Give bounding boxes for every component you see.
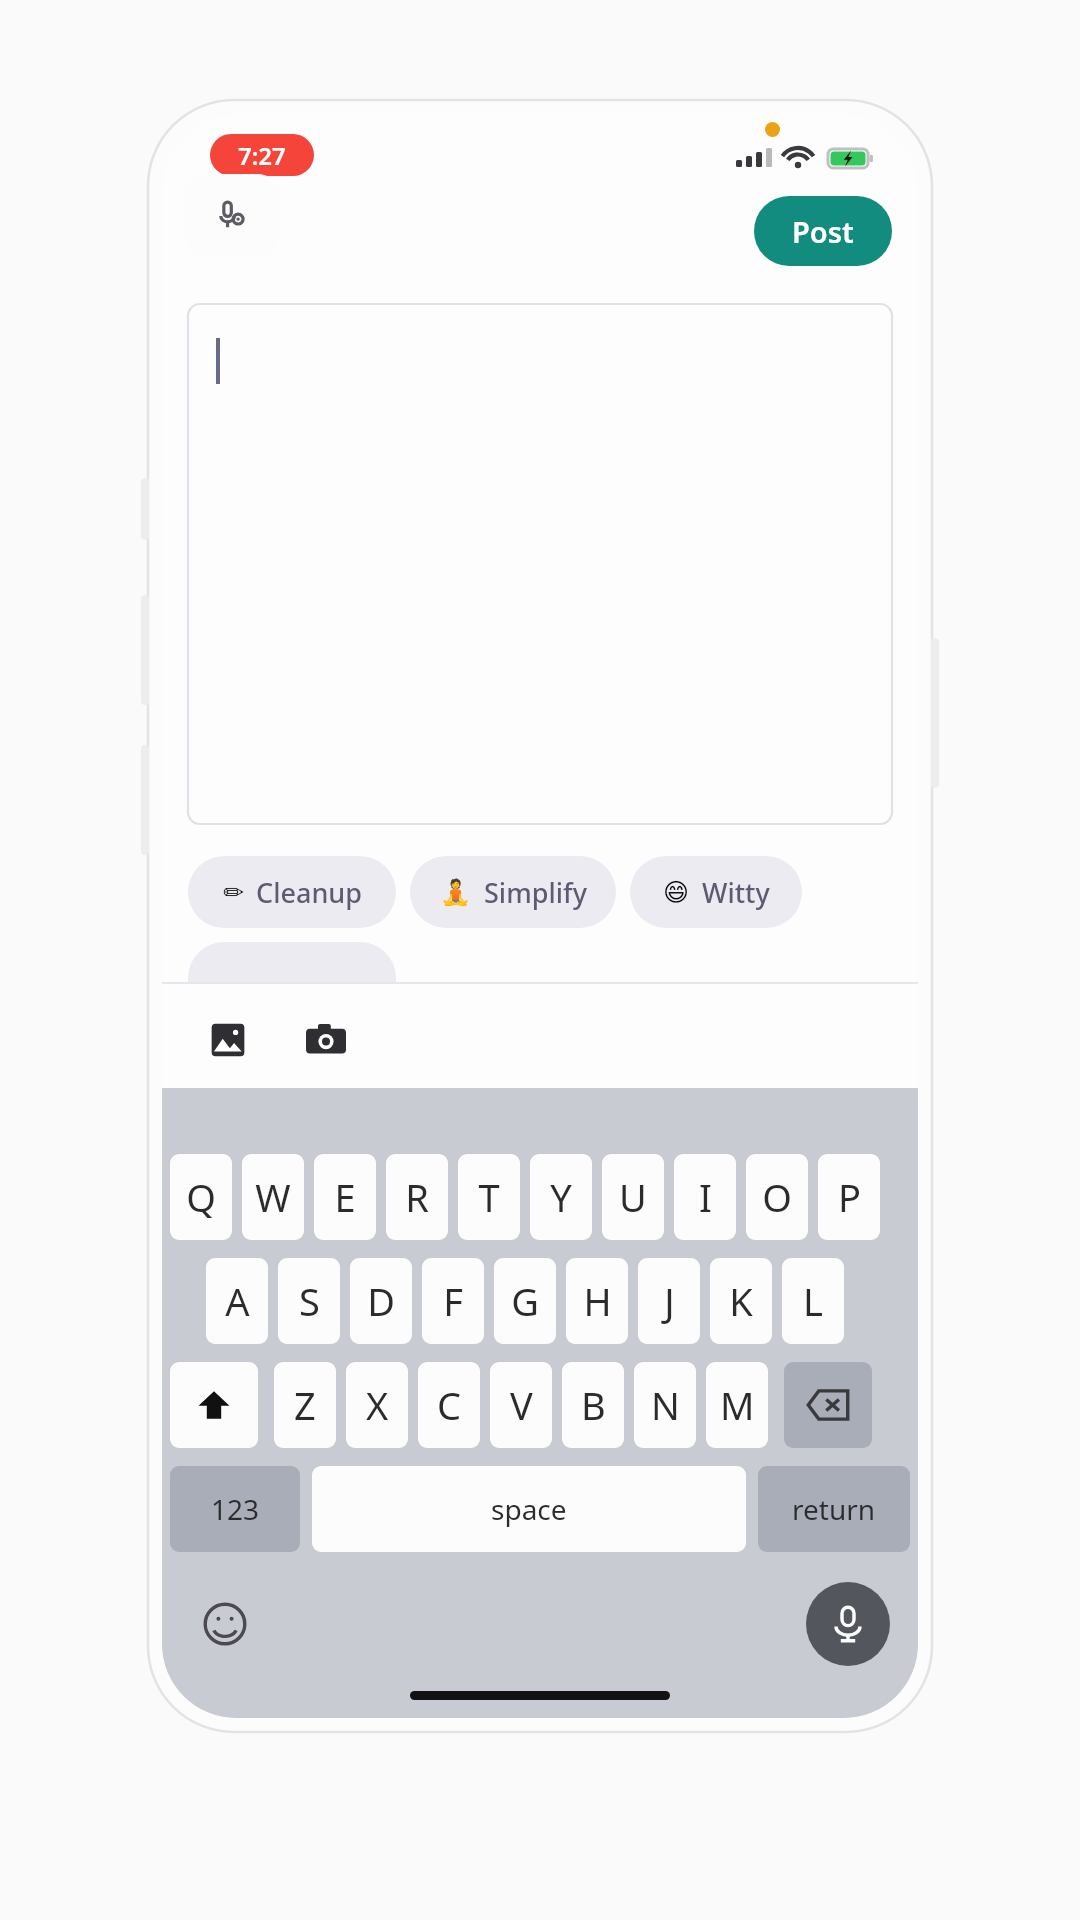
staticText: T (478, 1171, 500, 1223)
staticText: 🧘 (440, 878, 472, 907)
button[interactable]: R (386, 1154, 448, 1240)
button[interactable]: G (494, 1258, 556, 1344)
button[interactable]: S (278, 1258, 340, 1344)
staticText: return (792, 1490, 876, 1528)
staticText: R (405, 1171, 429, 1223)
button[interactable]: Q (170, 1154, 232, 1240)
button[interactable]: I (674, 1154, 736, 1240)
staticText: E (334, 1171, 356, 1223)
button[interactable]: Y (530, 1154, 592, 1240)
button[interactable]: Post (754, 196, 892, 266)
button[interactable]: N (634, 1362, 696, 1448)
button[interactable]: 123 (170, 1466, 300, 1552)
button[interactable]: 🧘 (410, 856, 616, 928)
button[interactable]: F (422, 1258, 484, 1344)
button[interactable]: Shift (170, 1362, 258, 1448)
button[interactable]: P (818, 1154, 880, 1240)
staticText: W (255, 1171, 291, 1223)
staticText: X (366, 1379, 389, 1431)
button[interactable]: X (346, 1362, 408, 1448)
staticText: Simplify (484, 874, 587, 911)
button[interactable]: L (782, 1258, 844, 1344)
staticText: A (225, 1275, 250, 1327)
staticText: Cleanup (256, 874, 362, 911)
button[interactable]: K (710, 1258, 772, 1344)
button[interactable]: 😄 (630, 856, 802, 928)
button[interactable]: Emoji (190, 1589, 260, 1659)
button[interactable]: W (242, 1154, 304, 1240)
button[interactable]: M (706, 1362, 768, 1448)
staticText: 😄 (663, 878, 690, 907)
button[interactable]: C (418, 1362, 480, 1448)
staticText: K (729, 1275, 753, 1327)
staticText: D (367, 1275, 395, 1327)
staticText: O (762, 1171, 792, 1223)
button[interactable]: U (602, 1154, 664, 1240)
staticText: Post (792, 212, 854, 251)
staticText: P (838, 1171, 861, 1223)
button[interactable]: A (206, 1258, 268, 1344)
staticText: U (619, 1171, 647, 1223)
staticText: 123 (211, 1490, 260, 1528)
button[interactable]: ✏️ (188, 856, 396, 928)
button[interactable]: T (458, 1154, 520, 1240)
button[interactable]: J (638, 1258, 700, 1344)
staticText: Y (550, 1171, 572, 1223)
button[interactable]: Microphone settings (184, 174, 280, 256)
staticText: space (491, 1490, 567, 1528)
staticText: I (699, 1171, 712, 1223)
staticText: B (581, 1379, 606, 1431)
button[interactable]: Z (274, 1362, 336, 1448)
button[interactable]: E (314, 1154, 376, 1240)
button[interactable]: Take photo (290, 1004, 362, 1076)
button[interactable]: Dictate (806, 1582, 890, 1666)
button[interactable]: D (350, 1258, 412, 1344)
staticText: C (437, 1379, 462, 1431)
button[interactable]: V (490, 1362, 552, 1448)
staticText: 7:27 (238, 139, 286, 172)
staticText: M (720, 1379, 755, 1431)
button[interactable]: O (746, 1154, 808, 1240)
button[interactable]: return (758, 1466, 910, 1552)
staticText: L (803, 1275, 823, 1327)
staticText: Witty (702, 874, 770, 911)
button[interactable] (188, 942, 396, 982)
button[interactable]: B (562, 1362, 624, 1448)
button[interactable]: Delete (784, 1362, 872, 1448)
staticText: J (664, 1275, 675, 1327)
staticText: F (443, 1275, 463, 1327)
staticText: V (510, 1379, 533, 1431)
staticText: H (583, 1275, 612, 1327)
staticText: G (511, 1275, 539, 1327)
button[interactable]: H (566, 1258, 628, 1344)
staticText: Z (294, 1379, 316, 1431)
staticText: Q (186, 1171, 216, 1223)
staticText: S (299, 1275, 320, 1327)
staticText: ✏️ (223, 878, 244, 907)
button[interactable] (188, 304, 892, 824)
button[interactable]: Add photo (192, 1004, 264, 1076)
staticText: N (651, 1379, 680, 1431)
button[interactable]: space (312, 1466, 746, 1552)
